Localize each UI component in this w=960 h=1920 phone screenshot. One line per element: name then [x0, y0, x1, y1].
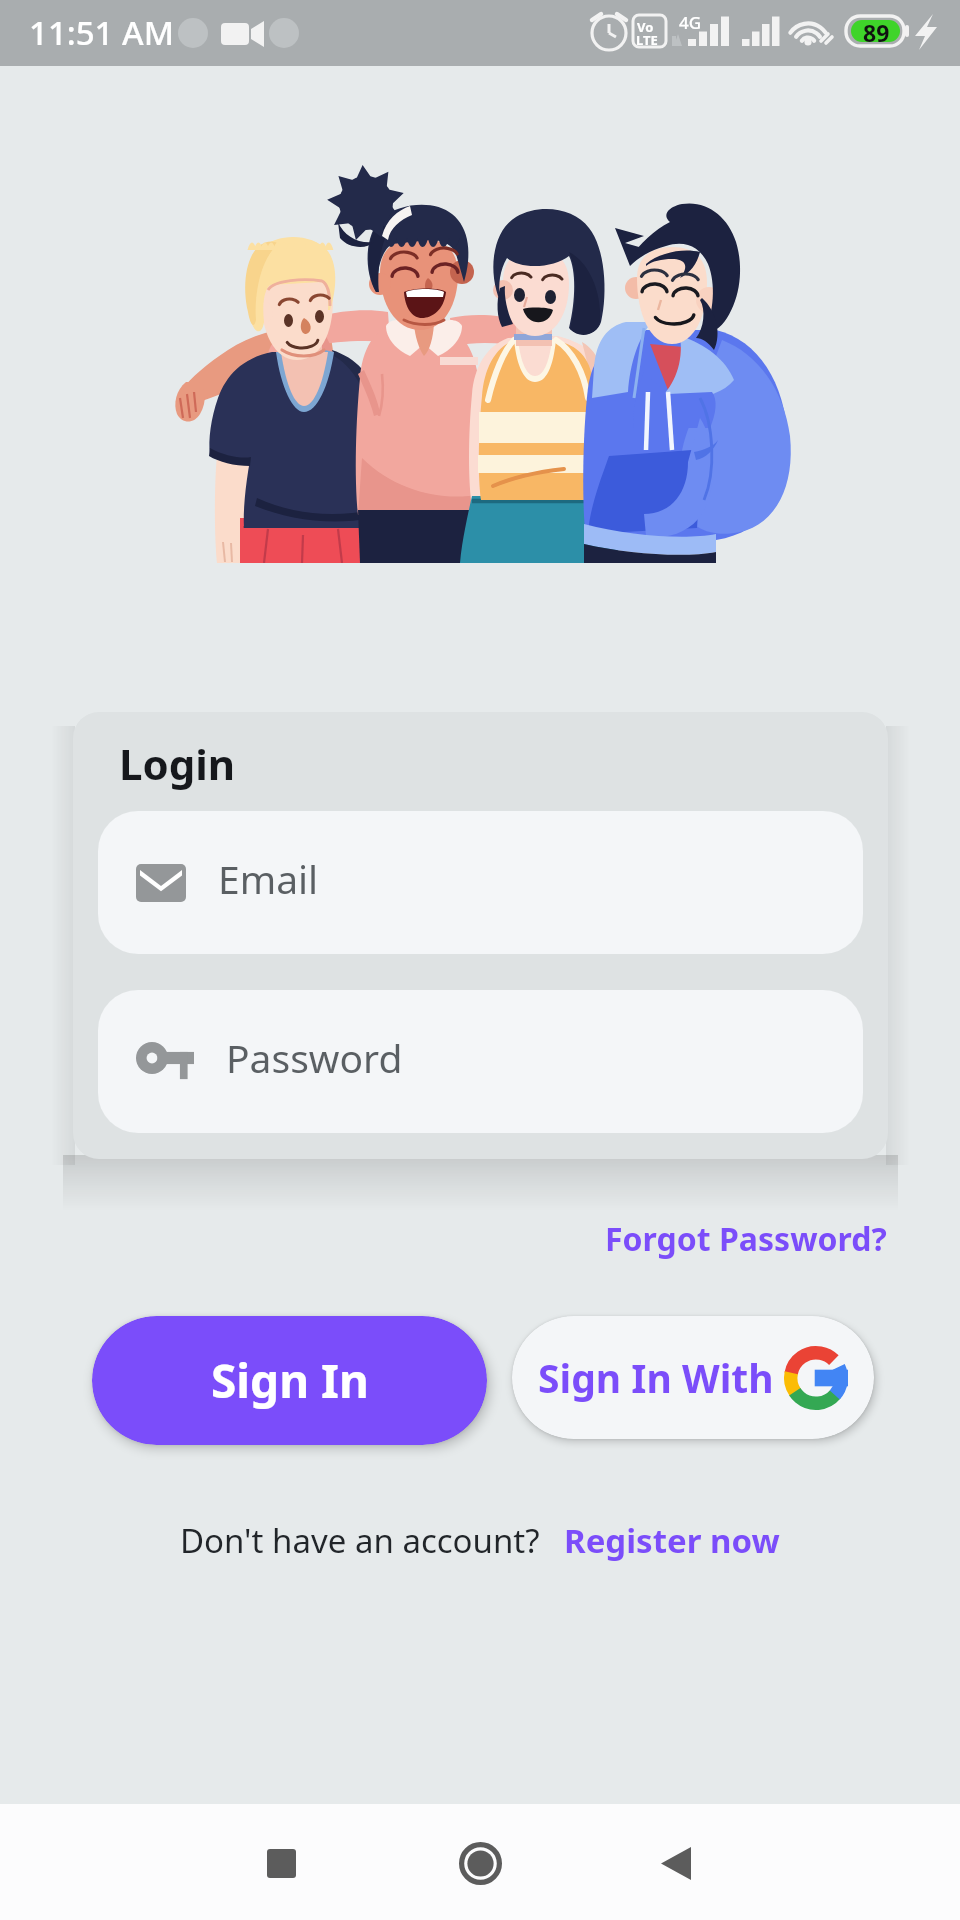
button[interactable]: Email — [98, 811, 863, 954]
staticText: LTE — [636, 31, 658, 49]
staticText: Don't have an account? — [180, 1518, 540, 1563]
button[interactable]: Forgot Password? — [603, 1213, 889, 1265]
staticText: 4G — [679, 11, 702, 34]
button[interactable]: Sign In — [92, 1316, 487, 1445]
staticText: Email — [218, 852, 319, 905]
button[interactable]: Register now — [564, 1518, 780, 1563]
staticText: Sign In With — [538, 1351, 774, 1404]
staticText: Register now — [564, 1518, 780, 1563]
staticText: Login — [119, 735, 236, 792]
button[interactable]: Sign In With — [512, 1316, 874, 1439]
staticText: Password — [226, 1031, 403, 1084]
staticText: 89 — [863, 17, 890, 48]
staticText: Forgot Password? — [605, 1217, 887, 1261]
button[interactable]: Password — [98, 990, 863, 1133]
button[interactable]: Recent apps — [231, 1813, 331, 1913]
staticText: Sign In — [211, 1349, 369, 1412]
staticText: Vo — [637, 18, 654, 36]
staticText: 11:51 AM — [29, 10, 174, 55]
button[interactable]: Home — [430, 1813, 530, 1913]
button[interactable]: Back — [626, 1813, 726, 1913]
